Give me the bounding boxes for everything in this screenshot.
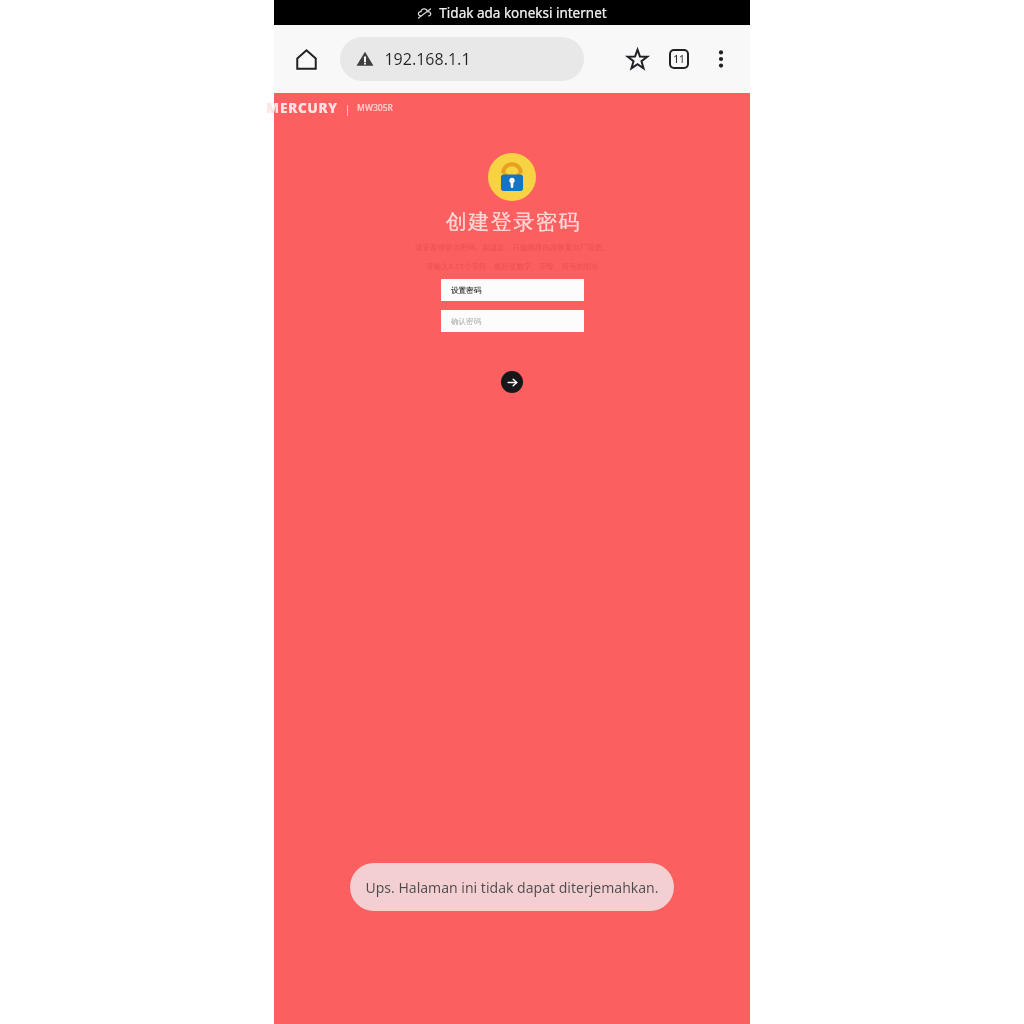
button[interactable]: Ups. Halaman ini tidak dapat diterjemahk… [350, 863, 674, 911]
button[interactable]: Tabs, 11 open [658, 38, 700, 80]
staticText: 请输入6-15个字符，最好是数字、字母、符号的组合 [426, 261, 599, 271]
staticText: Ups. Halaman ini tidak dapat diterjemahk… [365, 878, 659, 897]
staticText: Tidak ada koneksi internet [439, 4, 607, 22]
staticText: 请妥善保管当密码。如遗忘，只能将路由器恢复出厂设置。 [415, 243, 610, 252]
button[interactable]: Home [286, 39, 326, 79]
button[interactable]: 192.168.1.1 [340, 37, 584, 81]
button[interactable]: Bookmark [616, 38, 658, 80]
staticText: 设置密码 [451, 286, 481, 295]
staticText: MW305R [357, 102, 393, 114]
button[interactable]: Submit [501, 371, 523, 393]
staticText: 192.168.1.1 [384, 48, 471, 70]
staticText: 创建登录密码 [445, 209, 580, 235]
button[interactable]: More options [700, 38, 742, 80]
staticText: MERCURY [266, 99, 338, 117]
staticText: 11 [673, 52, 685, 66]
staticText: | [344, 101, 351, 116]
button[interactable]: 设置密码 [441, 279, 584, 301]
staticText: 确认密码 [451, 317, 481, 326]
button[interactable]: 确认密码 [441, 310, 584, 332]
